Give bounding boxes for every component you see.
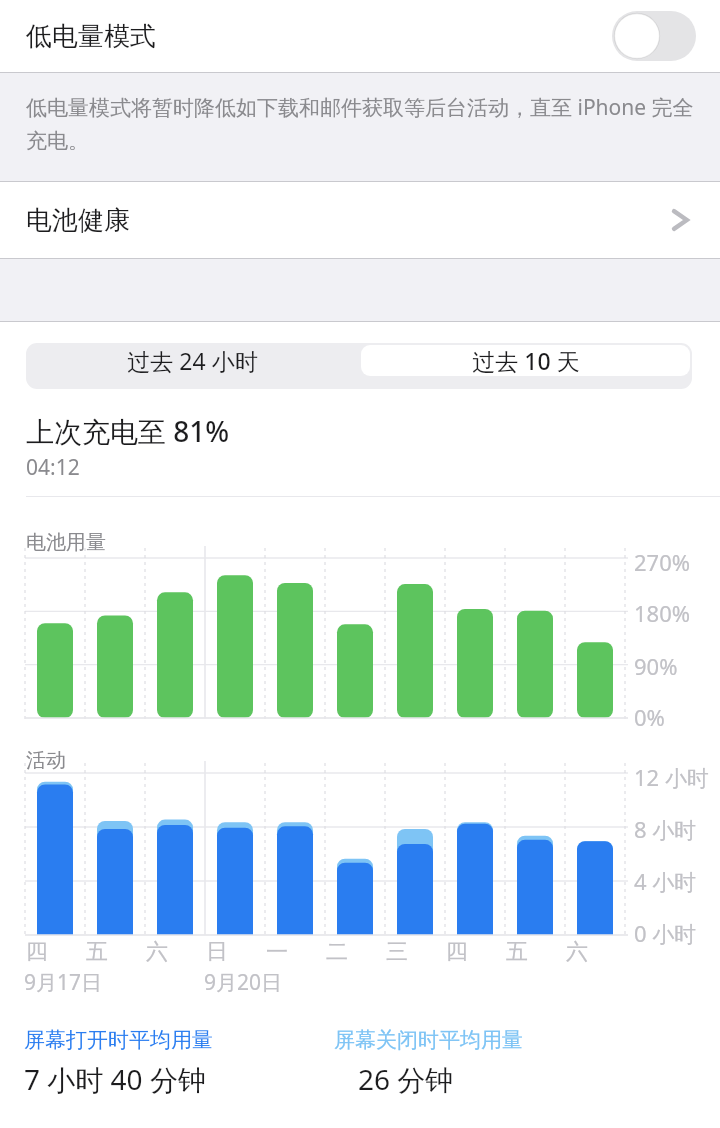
staticText: 0% (634, 702, 665, 732)
staticText: 二 (326, 938, 348, 966)
button[interactable]: 低电量模式开关 (612, 11, 696, 61)
staticText: 9月17日 (24, 968, 103, 997)
staticText: 屏幕打开时平均用量 (24, 1027, 213, 1053)
button[interactable]: 过去 10 天 (361, 345, 690, 376)
staticText: 过去 24 小时 (127, 345, 258, 376)
staticText: 六 (146, 938, 168, 966)
staticText: 五 (86, 938, 108, 966)
staticText: 活动 (26, 748, 66, 773)
staticText: 一 (266, 938, 288, 966)
staticText: 12 小时 (634, 762, 709, 792)
staticText: 四 (446, 938, 468, 966)
staticText: 低电量模式将暂时降低如下载和邮件获取等后台活动，直至 iPhone 完全充电。 (26, 93, 696, 154)
staticText: 三 (386, 938, 408, 966)
staticText: 26 分钟 (358, 1060, 454, 1098)
button[interactable]: 过去 24 小时 (28, 345, 357, 376)
staticText: 180% (634, 598, 691, 628)
staticText: 4 小时 (634, 866, 697, 896)
button[interactable]: 低电量模式 (0, 0, 720, 72)
button[interactable]: 电池健康 (0, 182, 720, 258)
staticText: 电池健康 (26, 204, 130, 237)
staticText: 270% (634, 547, 691, 577)
staticText: 四 (26, 938, 48, 966)
staticText: 过去 10 天 (472, 345, 580, 376)
staticText: 04:12 (26, 453, 80, 482)
staticText: 0 小时 (634, 918, 697, 948)
staticText: 90% (634, 651, 678, 681)
staticText: 低电量模式 (26, 20, 156, 53)
staticText: 屏幕关闭时平均用量 (334, 1027, 523, 1053)
staticText: 五 (506, 938, 528, 966)
staticText: 日 (206, 938, 228, 966)
staticText: 7 小时 40 分钟 (24, 1060, 206, 1098)
staticText: 8 小时 (634, 814, 697, 844)
staticText: 上次充电至 81% (26, 412, 230, 450)
staticText: 电池用量 (26, 530, 106, 555)
staticText: 9月20日 (204, 968, 283, 997)
staticText: 六 (566, 938, 588, 966)
